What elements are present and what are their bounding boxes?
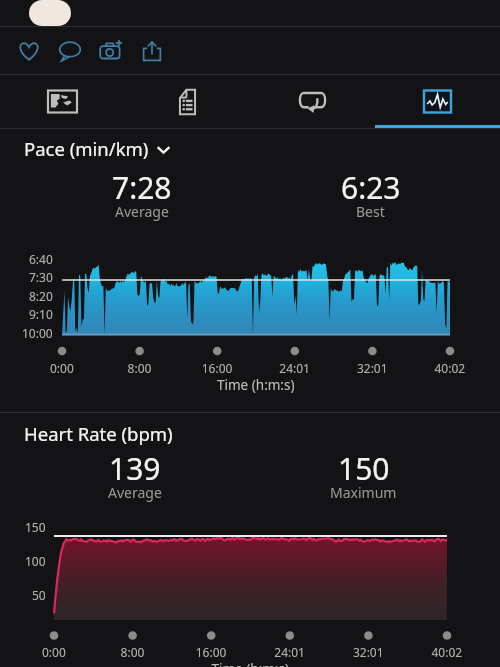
button[interactable]: Share — [131, 27, 172, 74]
button[interactable]: Map — [0, 75, 125, 128]
button[interactable]: Graphs — [375, 75, 500, 128]
staticText: 6:23 — [341, 167, 401, 208]
staticText: Average — [115, 202, 169, 221]
staticText: 7:28 — [112, 167, 172, 208]
staticText: Best — [356, 202, 385, 221]
button[interactable]: Laps — [250, 75, 375, 128]
button[interactable]: Comment — [49, 27, 90, 74]
staticText: Maximum — [330, 483, 397, 502]
button[interactable]: Like — [8, 27, 49, 74]
staticText: 150 — [338, 448, 390, 489]
staticText: 139 — [109, 448, 161, 489]
button[interactable]: Pace (min/km) — [24, 136, 177, 161]
button[interactable]: Add photo — [90, 27, 131, 74]
staticText: Average — [108, 483, 162, 502]
button[interactable]: Profile — [29, 0, 71, 26]
staticText: Pace (min/km) — [24, 136, 149, 161]
staticText: Heart Rate (bpm) — [24, 421, 173, 446]
button[interactable]: Details — [125, 75, 250, 128]
